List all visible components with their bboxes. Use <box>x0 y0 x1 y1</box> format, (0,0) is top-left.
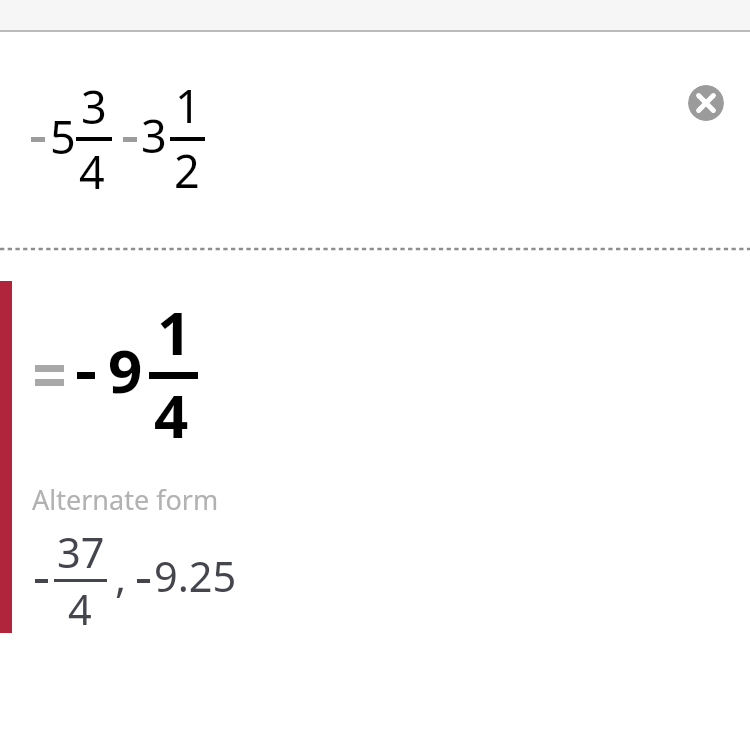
button[interactable]: Alternate form <box>24 476 254 632</box>
staticText: 37 <box>57 524 105 581</box>
staticText: 1 <box>157 291 192 373</box>
button[interactable]: Result minus nine and one quarter <box>20 300 220 450</box>
staticText: 1 <box>175 75 201 136</box>
staticText: 4 <box>68 581 92 638</box>
staticText: , <box>115 549 127 606</box>
staticText: Alternate form <box>32 481 219 518</box>
staticText: 4 <box>79 141 105 202</box>
button[interactable]: Clear expression <box>688 85 724 121</box>
staticText: 9.25 <box>154 548 237 605</box>
staticText: 4 <box>154 374 189 456</box>
staticText: 2 <box>174 140 200 201</box>
staticText: 5 <box>50 106 76 167</box>
staticText: 9 <box>108 329 143 411</box>
staticText: 3 <box>141 105 167 166</box>
staticText: 3 <box>81 76 107 137</box>
button[interactable]: Edit expression <box>18 72 218 202</box>
